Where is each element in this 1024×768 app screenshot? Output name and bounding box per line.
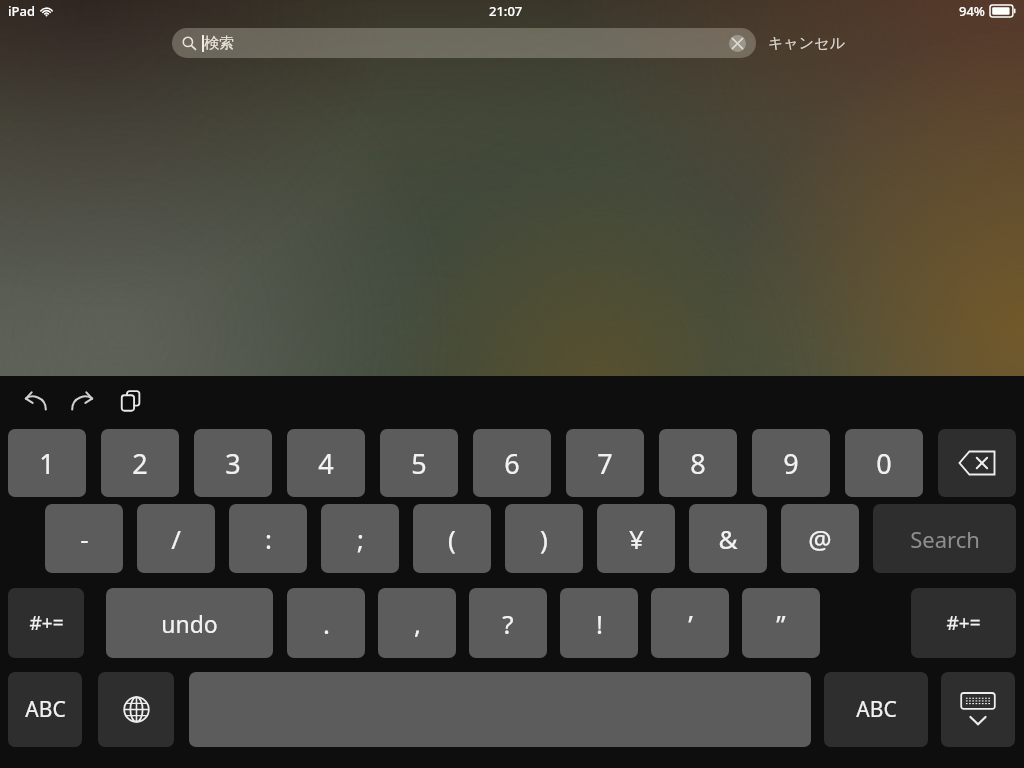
button[interactable]: 5 (380, 429, 458, 497)
staticText: 2 (132, 445, 148, 482)
button[interactable]: 6 (473, 429, 551, 497)
button[interactable]: 4 (287, 429, 365, 497)
staticText: ABC (25, 695, 66, 724)
button[interactable]: ” (742, 588, 820, 658)
staticText: ) (540, 521, 548, 556)
staticText: : (265, 521, 272, 556)
button[interactable]: ? (469, 588, 547, 658)
button[interactable]: . (287, 588, 365, 658)
button[interactable]: ABC (824, 672, 928, 747)
staticText: 1 (39, 445, 55, 482)
button[interactable]: Paste (114, 384, 148, 418)
button[interactable]: 8 (659, 429, 737, 497)
staticText: Search (910, 524, 980, 554)
button[interactable]: ¥ (597, 504, 675, 573)
staticText: iPad (8, 2, 35, 20)
staticText: undo (161, 608, 218, 639)
button[interactable]: 検索 (172, 28, 756, 58)
staticText: 6 (504, 445, 520, 482)
button[interactable]: Undo (18, 384, 52, 418)
button[interactable]: 1 (8, 429, 86, 497)
staticText: 9 (783, 445, 799, 482)
button[interactable]: 2 (101, 429, 179, 497)
button[interactable]: ( (413, 504, 491, 573)
staticText: / (171, 521, 181, 556)
staticText: 8 (690, 445, 706, 482)
staticText: 94% (959, 2, 985, 20)
staticText: 4 (318, 445, 334, 482)
staticText: 5 (411, 445, 427, 482)
button[interactable]: & (689, 504, 767, 573)
button[interactable]: ’ (651, 588, 729, 658)
button[interactable]: Hide keyboard (941, 672, 1015, 747)
button[interactable]: 7 (566, 429, 644, 497)
staticText: . (323, 606, 330, 641)
staticText: , (414, 606, 421, 641)
button[interactable]: #+= (8, 588, 84, 658)
staticText: ¥ (629, 521, 644, 556)
staticText: ; (357, 521, 364, 556)
button[interactable]: @ (781, 504, 859, 573)
button[interactable]: Redo (66, 384, 100, 418)
button[interactable]: ) (505, 504, 583, 573)
staticText: @ (808, 521, 832, 556)
button[interactable]: : (229, 504, 307, 573)
staticText: 7 (597, 445, 613, 482)
button[interactable]: / (137, 504, 215, 573)
button[interactable]: 3 (194, 429, 272, 497)
button[interactable]: ! (560, 588, 638, 658)
staticText: 21:07 (489, 2, 523, 20)
button[interactable]: 0 (845, 429, 923, 497)
staticText: ( (448, 521, 456, 556)
button[interactable]: ; (321, 504, 399, 573)
staticText: ? (502, 606, 514, 641)
staticText: #+= (946, 610, 981, 636)
button[interactable]: , (378, 588, 456, 658)
button[interactable]: Change keyboard (98, 672, 174, 747)
button[interactable]: Backspace (938, 429, 1016, 497)
staticText: 検索 (204, 34, 234, 53)
button[interactable]: キャンセル (766, 30, 847, 57)
staticText: キャンセル (768, 34, 845, 53)
button[interactable]: Search (873, 504, 1016, 573)
button[interactable]: Clear text (729, 35, 746, 52)
button[interactable]: undo (106, 588, 273, 658)
staticText: ’ (688, 606, 693, 641)
staticText: 0 (876, 445, 892, 482)
staticText: 3 (225, 445, 241, 482)
staticText: & (718, 521, 738, 556)
staticText: - (80, 521, 89, 556)
button[interactable]: ABC (8, 672, 82, 747)
button[interactable]: #+= (911, 588, 1016, 658)
staticText: ABC (856, 695, 897, 724)
staticText: #+= (29, 610, 64, 636)
staticText: ! (596, 606, 603, 641)
button[interactable]: - (45, 504, 123, 573)
button[interactable]: 9 (752, 429, 830, 497)
staticText: ” (776, 606, 786, 641)
